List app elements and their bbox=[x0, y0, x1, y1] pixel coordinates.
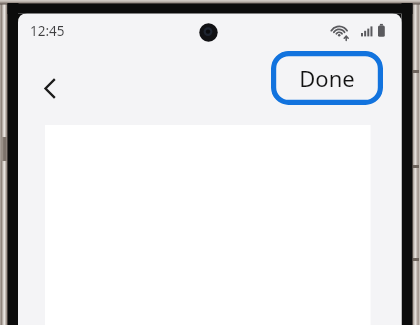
button[interactable]: Back bbox=[32, 71, 67, 106]
staticText: Done bbox=[299, 63, 355, 93]
staticText: 12:45 bbox=[30, 22, 65, 40]
button[interactable]: Done bbox=[271, 51, 383, 105]
